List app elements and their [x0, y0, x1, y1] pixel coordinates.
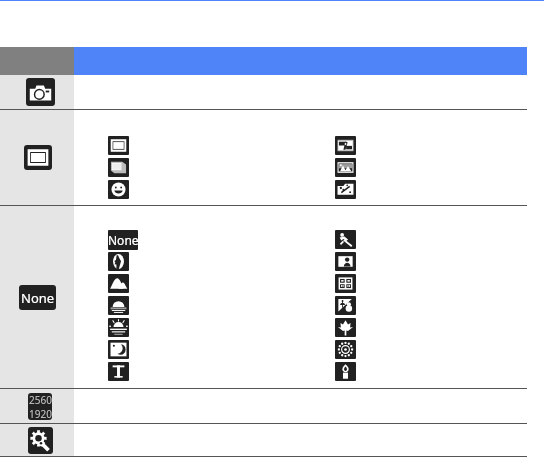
button[interactable]: Candlelight	[335, 362, 356, 381]
staticText: None	[108, 232, 138, 248]
staticText: None	[21, 289, 55, 307]
button[interactable]: Landscape	[108, 274, 129, 293]
button[interactable]: Panorama	[108, 158, 129, 177]
button[interactable]: None	[19, 285, 56, 310]
button[interactable]: Settings	[0, 424, 74, 456]
button[interactable]: Party	[335, 252, 356, 271]
button[interactable]: Settings	[28, 427, 53, 454]
button[interactable]: Dawn	[108, 318, 129, 337]
button[interactable]: Portrait	[108, 252, 129, 271]
button[interactable]: 2560	[0, 389, 74, 423]
button[interactable]: Shooting mode	[24, 145, 52, 170]
button[interactable]: Effects	[335, 180, 356, 199]
button[interactable]: Indoor	[335, 274, 356, 293]
button[interactable]: Single shot	[108, 136, 129, 155]
button[interactable]: None	[0, 206, 74, 388]
button[interactable]: Sports	[335, 230, 356, 249]
button[interactable]: Scene	[335, 136, 356, 155]
button[interactable]: Shooting mode	[0, 110, 74, 205]
button[interactable]: Firework	[335, 340, 356, 359]
button[interactable]: Sunset	[108, 296, 129, 315]
button[interactable]: Beach snow	[335, 296, 356, 315]
button[interactable]: Fall color	[335, 318, 356, 337]
button[interactable]: Beauty	[335, 158, 356, 177]
button[interactable]: Smile shot	[108, 180, 129, 199]
button[interactable]: Camera	[26, 78, 55, 106]
button[interactable]: Night	[108, 340, 129, 359]
staticText: 1920	[29, 407, 52, 420]
button[interactable]: Camera	[0, 75, 74, 109]
staticText: 2560	[29, 393, 52, 407]
button[interactable]: 2560	[28, 393, 52, 420]
button[interactable]: Text	[108, 362, 129, 381]
button[interactable]: None	[108, 230, 138, 250]
